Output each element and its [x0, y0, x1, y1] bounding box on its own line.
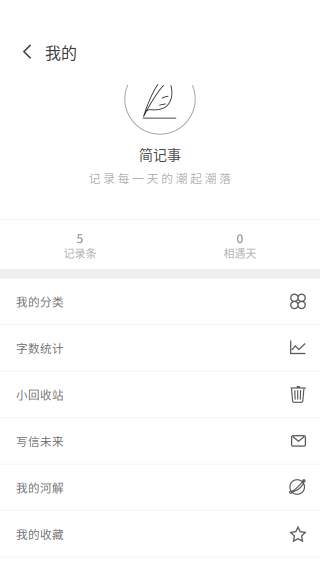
button[interactable]: 我的河解 — [0, 464, 320, 511]
button[interactable]: 我的收藏 — [0, 511, 320, 557]
staticText: 记录条 — [63, 245, 96, 261]
staticText: 我的收藏 — [16, 525, 64, 542]
staticText: 相遇天 — [223, 245, 256, 261]
button[interactable]: 写信未来 — [0, 418, 320, 464]
staticText: 我的 — [45, 40, 77, 64]
staticText: 字数统计 — [16, 339, 64, 356]
button[interactable]: 小回收站 — [0, 371, 320, 418]
staticText: 小回收站 — [16, 386, 64, 403]
staticText: 写信未来 — [16, 432, 64, 449]
button[interactable]: 我的分类 — [0, 278, 320, 325]
staticText: 我的分类 — [16, 293, 64, 310]
staticText: 记录每一天的潮起潮落 — [89, 170, 231, 186]
staticText: 简记事 — [139, 144, 181, 164]
button[interactable]: Back — [0, 35, 91, 69]
staticText: 0 — [236, 229, 243, 247]
button[interactable]: 5 — [0, 228, 160, 277]
button[interactable]: 0 — [160, 228, 320, 277]
staticText: 5 — [76, 229, 83, 247]
button[interactable]: 字数统计 — [0, 325, 320, 371]
staticText: 我的河解 — [16, 479, 64, 496]
